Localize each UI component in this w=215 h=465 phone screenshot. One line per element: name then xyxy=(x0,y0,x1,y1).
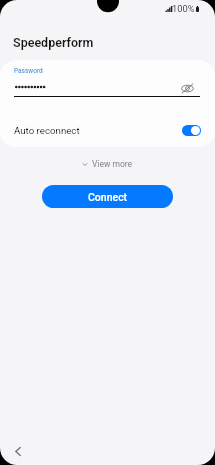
staticText: Auto reconnect xyxy=(14,125,80,136)
button[interactable]: Back xyxy=(10,443,26,459)
button[interactable]: Connect xyxy=(42,185,173,208)
staticText: Connect xyxy=(88,191,128,203)
button[interactable]: Show password xyxy=(180,81,195,96)
staticText: 100% xyxy=(172,3,195,14)
staticText: View more xyxy=(92,159,133,169)
staticText: Speedperform xyxy=(13,35,94,50)
button[interactable]: View more xyxy=(79,155,137,173)
button[interactable]: Auto reconnect toggle xyxy=(182,125,201,136)
staticText: Password xyxy=(14,67,43,75)
button[interactable]: Auto reconnect xyxy=(0,122,215,138)
